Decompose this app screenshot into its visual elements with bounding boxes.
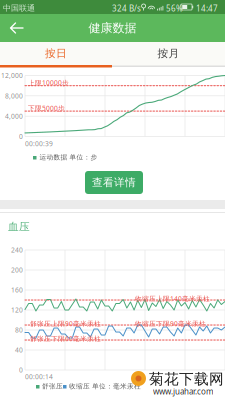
button[interactable]: 按日	[0, 42, 112, 65]
staticText: 按日	[45, 47, 67, 60]
staticText: 12,000	[1, 71, 23, 80]
staticText: 0	[19, 132, 23, 141]
staticText: 80	[15, 325, 23, 335]
staticText: 40	[15, 345, 23, 355]
staticText: 4,000	[5, 112, 23, 121]
staticText: 8,000	[5, 91, 23, 100]
staticText: 舒张压	[42, 382, 63, 390]
staticText: 菊花下载网	[149, 370, 224, 388]
staticText: www.juahar.com	[153, 386, 213, 397]
staticText: 00:00:39	[25, 139, 53, 148]
button[interactable]: 查看详情	[85, 171, 143, 194]
staticText: 查看详情	[92, 176, 136, 189]
staticText: 舒张压上限90毫米汞柱	[30, 319, 101, 328]
staticText: 运动数据 单位：步	[39, 153, 97, 161]
staticText: 0	[19, 365, 23, 375]
staticText: 按月	[157, 47, 179, 60]
staticText: 00:00:14	[25, 372, 53, 381]
staticText: 56%	[166, 3, 183, 14]
staticText: 14:47	[196, 3, 218, 14]
staticText: 收缩压上限140毫米汞柱	[135, 294, 210, 303]
staticText: 收缩压下限90毫米汞柱	[135, 319, 206, 328]
staticText: 舒张压下限60毫米汞柱	[30, 334, 101, 343]
staticText: 120	[11, 305, 23, 315]
staticText: 160	[11, 285, 23, 295]
staticText: 中国联通	[3, 3, 35, 13]
button[interactable]: 按月	[112, 42, 225, 65]
staticText: 324 B/s	[112, 3, 141, 14]
staticText: 240	[11, 245, 23, 255]
staticText: 健康数据	[88, 20, 136, 35]
staticText: 200	[11, 265, 23, 275]
staticText: 收缩压 单位：毫米汞柱	[69, 382, 141, 390]
staticText: 上限10000步	[28, 78, 69, 87]
staticText: 血压	[8, 220, 30, 233]
button[interactable]: Back	[0, 14, 34, 42]
staticText: 下限5000步	[28, 104, 65, 113]
